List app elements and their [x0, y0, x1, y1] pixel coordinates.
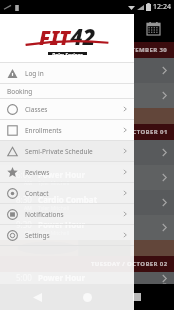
staticText: 6:00 [16, 169, 32, 180]
button[interactable]: 6:00 [0, 165, 174, 190]
staticText: AM [24, 230, 32, 237]
staticText: 42 [70, 21, 96, 51]
staticText: Power Hour [38, 169, 85, 180]
button[interactable]: Log in [0, 63, 134, 83]
button[interactable]: Reviews [0, 162, 134, 182]
staticText: Palm Springs [52, 52, 83, 55]
staticText: Tyler Mitchell [38, 230, 70, 237]
staticText: MONDAY / OCTOBER 01 [91, 128, 168, 136]
staticText: 5:00 [16, 144, 32, 155]
staticText: SUNDAY / SEPTEMBER 30 [86, 46, 168, 54]
staticText: Power Hour [38, 144, 85, 155]
staticText: AM [24, 155, 32, 162]
staticText: Tyler Mitchell [38, 180, 70, 187]
staticText: 6:00 [16, 87, 32, 98]
staticText: Tyler Mitchell [38, 98, 70, 105]
button[interactable]: Settings [0, 225, 134, 245]
button[interactable]: Home [74, 284, 100, 310]
button[interactable]: Enrollments [0, 120, 134, 140]
staticText: Enrollments [25, 126, 62, 135]
staticText: Contact [25, 189, 49, 198]
button[interactable]: Contact [0, 183, 134, 203]
staticText: Settings [25, 231, 50, 240]
staticText: Classes [25, 105, 48, 114]
staticText: FIT [39, 24, 70, 51]
button[interactable]: Notifications [0, 204, 134, 224]
staticText: Cardio Combat [38, 194, 98, 205]
staticText: 8:30 [16, 194, 32, 205]
staticText: PM [24, 73, 32, 80]
staticText: Cardio Combat [38, 62, 98, 73]
staticText: Booking [7, 87, 33, 96]
staticText: Notifications [25, 210, 64, 219]
staticText: Reviews [25, 168, 50, 177]
button[interactable]: Semi-Private Schedule [0, 141, 134, 161]
button[interactable]: 6:00 [0, 83, 174, 108]
staticText: Tyler Mitchell [38, 155, 70, 162]
button[interactable]: 5:15 [0, 58, 174, 83]
button[interactable]: 5:00 [0, 272, 174, 284]
button[interactable]: 5:00 [0, 140, 174, 165]
button[interactable]: 8:30 [0, 190, 174, 215]
staticText: TUESDAY / OCTOBER 02 [91, 260, 168, 268]
staticText: 12:24 [153, 2, 171, 12]
staticText: Tyler Mitchell [38, 73, 70, 80]
staticText: 9:30 [16, 219, 32, 230]
staticText: Power Hour [38, 219, 85, 230]
button[interactable]: Classes [0, 99, 134, 119]
staticText: 5:15 [16, 62, 32, 73]
staticText: AM [24, 180, 32, 187]
button[interactable]: 9:30 [0, 215, 174, 240]
button[interactable]: Back [24, 284, 50, 310]
staticText: PM [24, 98, 32, 105]
staticText: Power Hour [38, 272, 85, 283]
staticText: Semi-Private Schedule [25, 147, 93, 156]
button[interactable]: Calendar [142, 17, 164, 39]
button[interactable]: Recents [124, 284, 150, 310]
staticText: Log in [25, 69, 44, 78]
